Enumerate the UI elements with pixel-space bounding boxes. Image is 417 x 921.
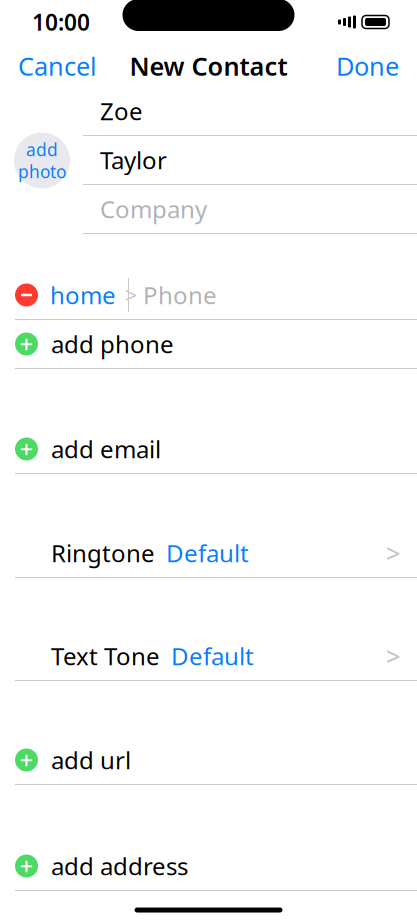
- staticText: add address: [51, 850, 188, 882]
- button[interactable]: Done: [336, 41, 417, 91]
- staticText: Text Tone: [51, 640, 160, 672]
- staticText: New Contact: [129, 49, 287, 83]
- staticText: Company: [100, 193, 207, 225]
- staticText: Zoe: [100, 95, 143, 127]
- staticText: add url: [51, 744, 131, 776]
- button[interactable]: +: [0, 736, 417, 785]
- staticText: add phone: [51, 328, 174, 360]
- staticText: >: [386, 536, 400, 570]
- staticText: photo: [18, 160, 66, 183]
- staticText: +: [19, 328, 33, 360]
- button[interactable]: +: [0, 425, 417, 474]
- button[interactable]: Ringtone: [0, 529, 417, 578]
- button[interactable]: Company: [83, 185, 417, 233]
- button[interactable]: +: [0, 320, 417, 369]
- staticText: add email: [51, 433, 161, 465]
- staticText: Default: [171, 640, 254, 672]
- button[interactable]: Cancel: [0, 41, 97, 91]
- staticText: add: [26, 138, 58, 161]
- button[interactable]: Text Tone: [0, 632, 417, 681]
- staticText: Default: [166, 537, 249, 569]
- staticText: Cancel: [18, 49, 97, 83]
- button[interactable]: +: [0, 842, 417, 891]
- button[interactable]: Zoe: [83, 87, 417, 135]
- staticText: 10:00: [32, 7, 90, 37]
- staticText: >: [125, 281, 137, 309]
- staticText: home: [50, 279, 116, 311]
- staticText: Phone: [143, 279, 217, 311]
- staticText: +: [19, 850, 33, 882]
- staticText: +: [19, 433, 33, 465]
- staticText: >: [386, 639, 400, 673]
- staticText: Ringtone: [51, 537, 155, 569]
- staticText: +: [19, 744, 33, 776]
- button[interactable]: Add photo: [14, 132, 70, 188]
- button[interactable]: Taylor: [83, 136, 417, 184]
- staticText: Done: [336, 49, 399, 83]
- button[interactable]: home: [0, 271, 417, 320]
- staticText: Taylor: [100, 144, 167, 176]
